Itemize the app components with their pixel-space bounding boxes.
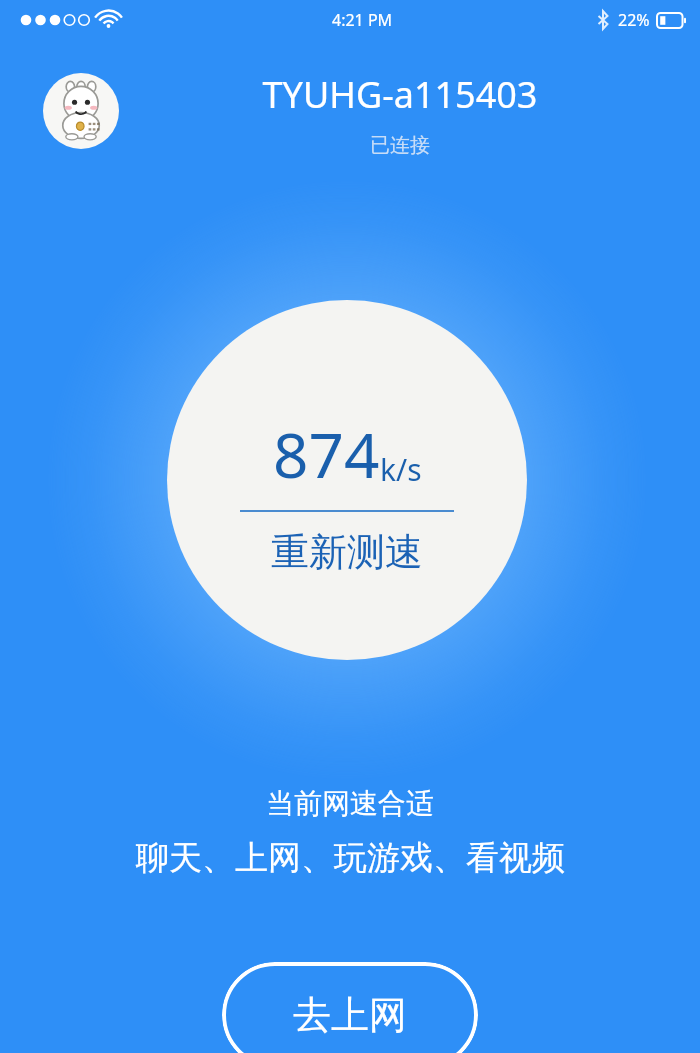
button[interactable]: 去上网 [222,962,478,1053]
staticText: k/s [380,449,422,490]
staticText: 去上网 [293,991,407,1039]
staticText: 22% [618,9,650,31]
staticText: 已连接 [120,133,680,158]
staticText: 4:21 PM [332,9,393,31]
staticText: 聊天、上网、玩游戏、看视频 [136,837,565,879]
staticText: TYUHG-a115403 [120,70,680,119]
button[interactable]: Avatar [43,73,119,149]
staticText: 当前网速合适 [266,786,434,821]
staticText: 重新测速 [271,528,423,576]
button[interactable]: 874 [167,300,527,660]
staticText: 874 [273,412,380,496]
